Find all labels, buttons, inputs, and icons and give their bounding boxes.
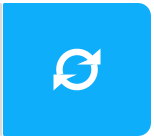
button[interactable]: Sync bbox=[3, 3, 151, 136]
